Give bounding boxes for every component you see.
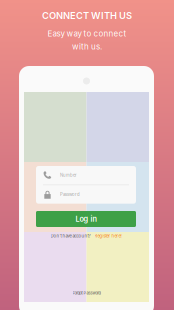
staticText: Register here! (94, 233, 121, 239)
staticText: Password (60, 192, 80, 197)
staticText: with us. (72, 42, 102, 51)
button[interactable]: Register here! (94, 233, 121, 239)
staticText: Don't have account? (50, 233, 90, 239)
staticText: CONNECT WITH US (42, 10, 132, 21)
staticText: Number (60, 173, 77, 178)
staticText: Log in (75, 215, 96, 223)
staticText: Forgot Password (72, 291, 100, 295)
staticText: Easy way to connect (47, 29, 126, 38)
button[interactable]: Log in (36, 211, 136, 227)
